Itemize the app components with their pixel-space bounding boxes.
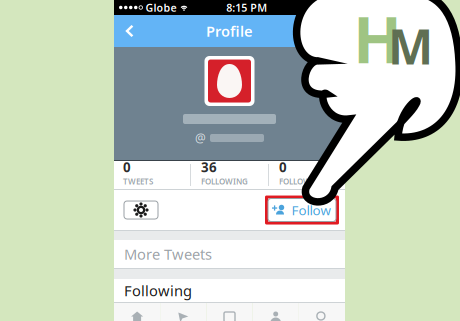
- staticText: 89°: [305, 0, 322, 15]
- button[interactable]: Me: [253, 303, 299, 321]
- staticText: 36: [201, 158, 217, 176]
- staticText: M: [388, 14, 433, 78]
- staticText: FOLLOWERS: [279, 176, 324, 187]
- button[interactable]: 0: [113, 161, 190, 189]
- button[interactable]: Back: [114, 15, 144, 47]
- button[interactable]: Follow: [265, 195, 339, 224]
- button[interactable]: Home: [114, 303, 160, 321]
- button[interactable]: 0: [269, 161, 346, 189]
- staticText: FOLLOWING: [201, 176, 248, 187]
- staticText: TWEETS: [123, 176, 153, 187]
- staticText: More Tweets: [124, 244, 212, 264]
- staticText: Following: [124, 281, 192, 300]
- button[interactable]: Search: [299, 303, 345, 321]
- staticText: 0: [279, 158, 287, 176]
- staticText: Globe: [145, 0, 176, 15]
- staticText: Profile: [206, 21, 253, 41]
- button[interactable]: More Tweets: [114, 240, 345, 268]
- staticText: 0: [123, 158, 131, 176]
- button[interactable]: Following: [114, 279, 345, 302]
- button[interactable]: Edit profile settings: [124, 201, 158, 219]
- button[interactable]: 36: [191, 161, 268, 189]
- button[interactable]: Discover: [206, 303, 253, 321]
- staticText: Follow: [291, 201, 330, 219]
- staticText: H: [353, 0, 402, 81]
- staticText: 8:15 PM: [226, 0, 267, 15]
- button[interactable]: Connect: [160, 303, 206, 321]
- staticText: @: [195, 130, 206, 146]
